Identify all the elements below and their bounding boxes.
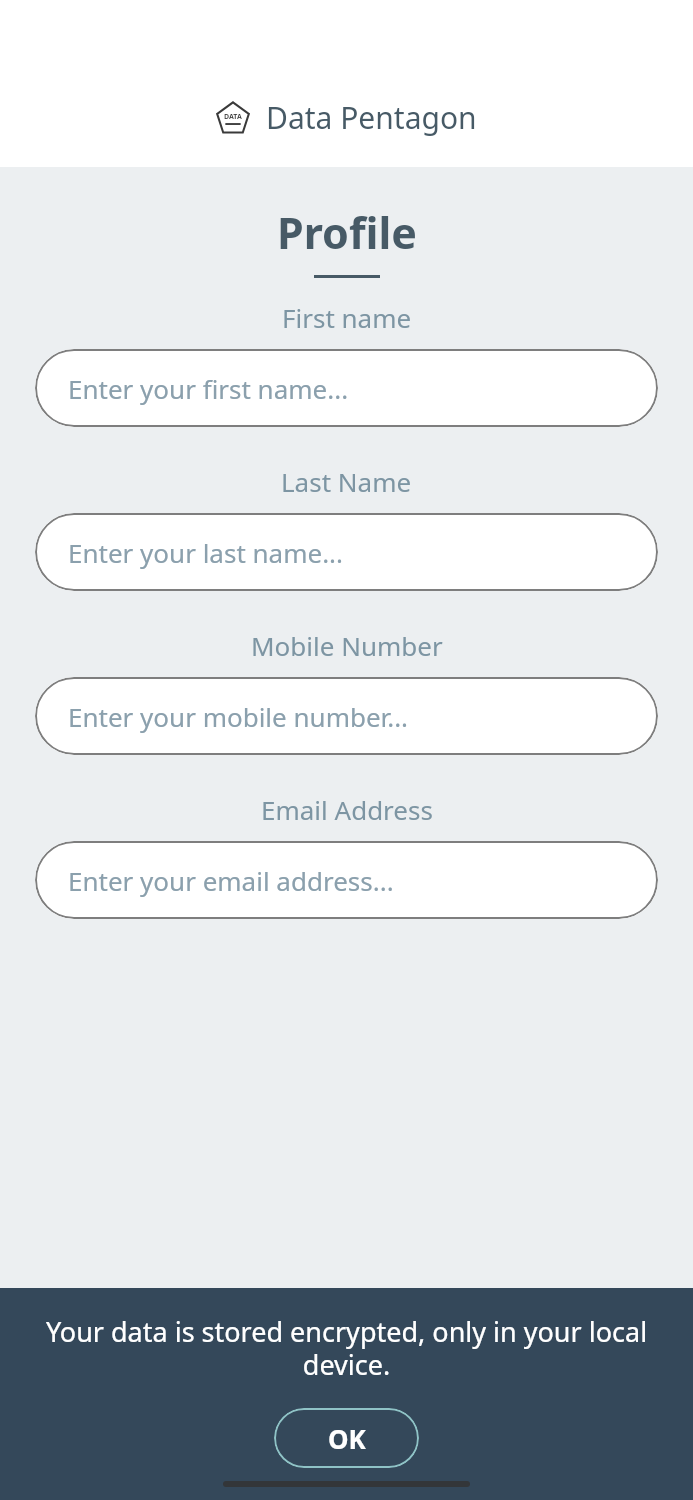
staticText: First name	[282, 300, 412, 335]
staticText: Your data is stored encrypted, only in y…	[44, 1313, 649, 1383]
other: Data Pentagon logo	[216, 101, 250, 135]
staticText: OK	[328, 1421, 366, 1456]
staticText: Last Name	[281, 464, 412, 499]
button[interactable]: OK	[274, 1408, 419, 1468]
staticText: Profile	[277, 203, 417, 262]
staticText: Mobile Number	[251, 628, 443, 663]
button[interactable]: Enter your mobile number...	[35, 677, 658, 755]
staticText: Enter your last name...	[68, 535, 344, 570]
staticText: Data Pentagon	[266, 97, 477, 138]
button[interactable]: Enter your email address...	[35, 841, 658, 919]
staticText: Enter your mobile number...	[68, 699, 409, 734]
staticText: Enter your first name...	[68, 371, 349, 406]
button[interactable]: Enter your first name...	[35, 349, 658, 427]
staticText: Email Address	[261, 792, 433, 827]
staticText: Enter your email address...	[68, 863, 394, 898]
button[interactable]: Enter your last name...	[35, 513, 658, 591]
staticText: DATA	[224, 112, 242, 122]
